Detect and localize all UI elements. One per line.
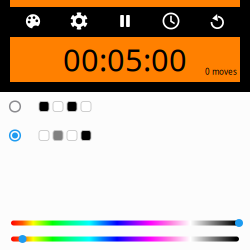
staticText: 00:05:00 xyxy=(63,39,187,80)
button[interactable]: Pause xyxy=(102,10,148,32)
button[interactable] xyxy=(0,121,250,150)
button[interactable] xyxy=(0,92,250,121)
button[interactable]: Undo xyxy=(194,10,240,32)
button[interactable]: Colors xyxy=(10,10,56,32)
button[interactable]: Timer xyxy=(148,10,194,32)
staticText: 0 moves xyxy=(205,66,237,77)
button[interactable]: Settings xyxy=(56,10,102,32)
